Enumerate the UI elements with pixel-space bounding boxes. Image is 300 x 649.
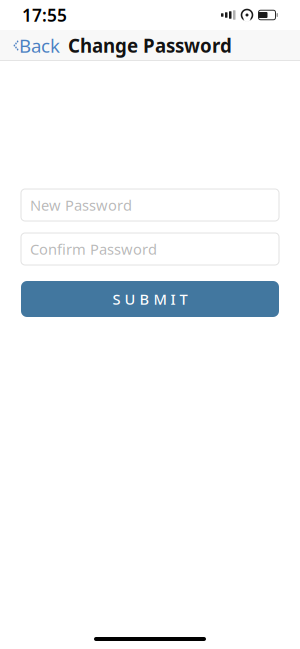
staticText: S U B M I T xyxy=(112,289,187,309)
staticText: New Password xyxy=(30,195,132,215)
staticText: Back xyxy=(19,33,60,58)
staticText: Change Password xyxy=(68,33,232,58)
button[interactable]: New Password xyxy=(21,189,279,221)
button[interactable]: Back xyxy=(0,28,68,63)
staticText: 17:55 xyxy=(22,3,67,26)
staticText: Confirm Password xyxy=(30,239,157,259)
button[interactable]: Confirm Password xyxy=(21,233,279,265)
button[interactable]: S U B M I T xyxy=(21,281,279,317)
